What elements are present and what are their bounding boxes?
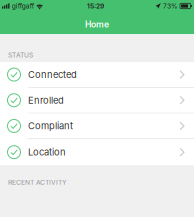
staticText: Enrolled <box>28 95 64 106</box>
staticText: RECENT ACTIVITY <box>8 178 67 186</box>
staticText: 15:29 <box>87 2 104 10</box>
button[interactable]: Compliant <box>0 113 194 139</box>
staticText: Compliant <box>28 120 73 132</box>
button[interactable]: Location <box>0 139 194 165</box>
staticText: 73% <box>163 2 178 10</box>
staticText: Connected <box>28 69 77 80</box>
staticText: Home <box>85 19 109 29</box>
staticText: Location <box>28 146 66 158</box>
button[interactable]: Connected <box>0 62 194 88</box>
button[interactable]: Enrolled <box>0 88 194 113</box>
staticText: STATUS <box>8 51 33 59</box>
staticText: giffgaff <box>12 2 34 10</box>
